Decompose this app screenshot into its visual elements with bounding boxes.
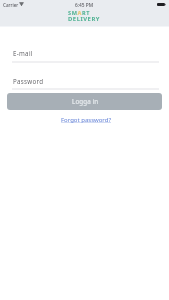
staticText: 6:45 PM [75, 2, 94, 9]
staticText: E-mail [13, 49, 33, 57]
staticText: SMART [68, 9, 91, 17]
button[interactable]: E-mail [0, 44, 169, 62]
staticText: Carrier [3, 2, 19, 8]
staticText: Forgot password? [61, 116, 112, 124]
staticText: Password [13, 77, 44, 85]
other: Wi-Fi signal [19, 2, 24, 6]
staticText: DELIVERY [68, 15, 101, 23]
button[interactable]: Password [0, 72, 169, 89]
other: Battery full [157, 3, 166, 6]
staticText: Logga in [72, 97, 99, 105]
button[interactable]: Logga in [7, 93, 162, 110]
button[interactable]: Forgot password? [61, 116, 112, 124]
